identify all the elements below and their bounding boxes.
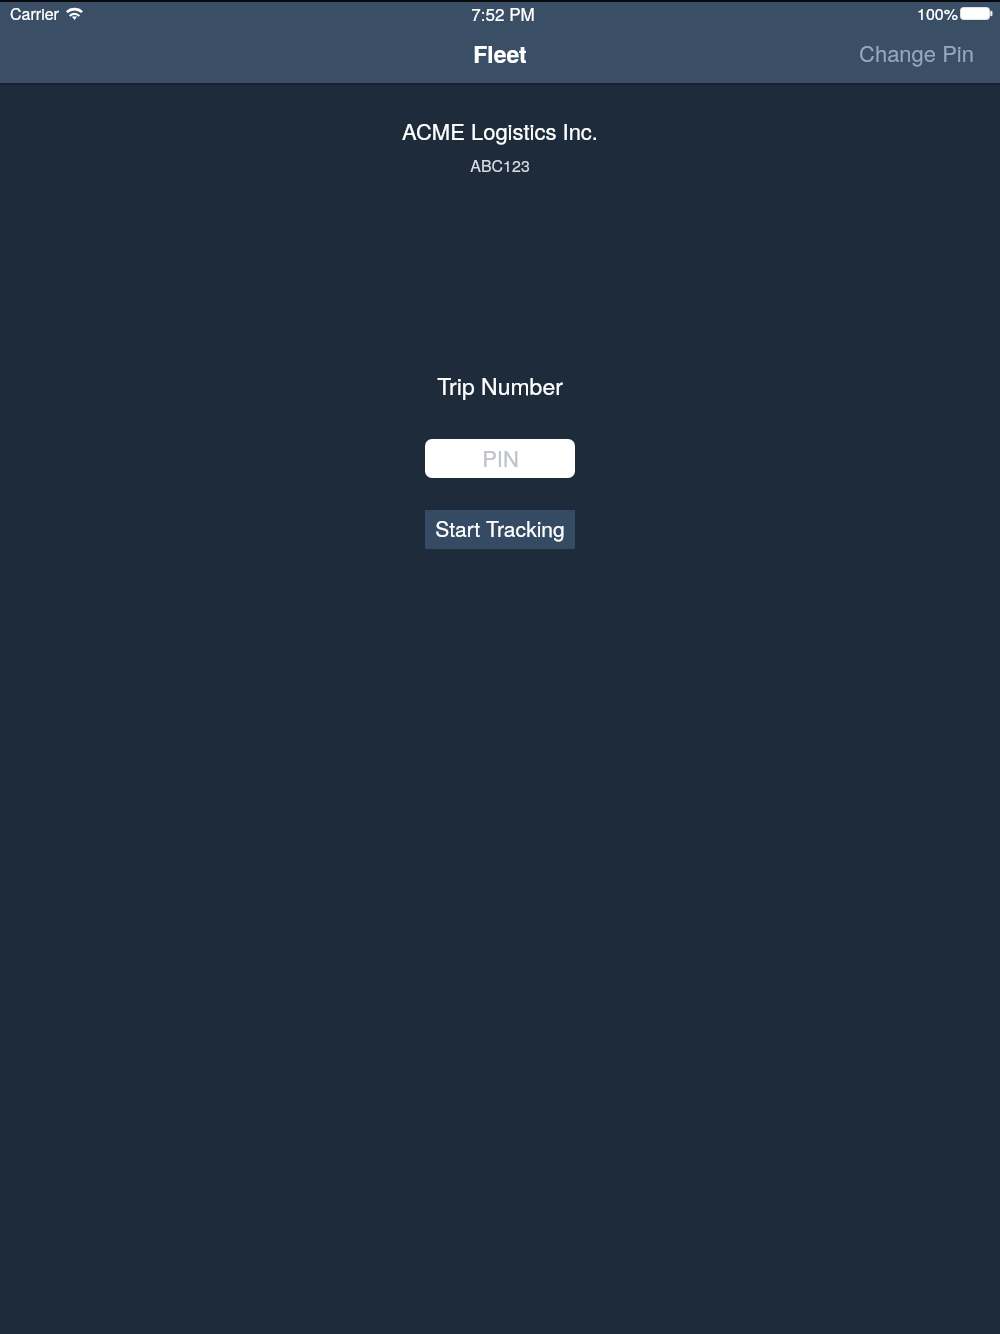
other: Wi-Fi xyxy=(66,7,83,21)
other: Battery full xyxy=(960,7,993,20)
staticText: 7:52 PM xyxy=(471,1,535,25)
staticText: Change Pin xyxy=(859,37,974,69)
staticText: Fleet xyxy=(473,37,527,70)
staticText: 100% xyxy=(917,2,958,25)
staticText: PIN xyxy=(482,442,519,474)
staticText: ACME Logistics Inc. xyxy=(402,115,598,147)
staticText: Start Tracking xyxy=(435,513,565,543)
staticText: Carrier xyxy=(10,2,59,25)
staticText: Trip Number xyxy=(437,369,563,402)
staticText: ABC123 xyxy=(470,154,530,177)
button[interactable]: Change Pin xyxy=(833,31,1000,75)
button[interactable]: Start Tracking xyxy=(425,510,575,549)
button[interactable]: PIN xyxy=(425,439,575,478)
